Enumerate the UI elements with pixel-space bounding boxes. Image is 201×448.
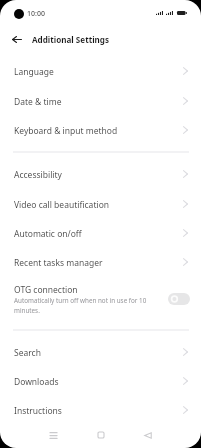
staticText: Search — [14, 347, 41, 359]
staticText: Additional Settings — [32, 34, 110, 45]
staticText: Video call beautification — [14, 199, 110, 211]
button[interactable]: Back — [126, 423, 170, 447]
staticText: Recent tasks manager — [14, 257, 103, 269]
staticText: Instructions — [14, 405, 62, 417]
button[interactable]: Downloads — [0, 367, 201, 396]
button[interactable]: Recent tasks manager — [0, 248, 201, 277]
button[interactable]: Back — [5, 27, 29, 51]
staticText: OTG connection — [14, 284, 78, 296]
button[interactable]: Language — [0, 57, 201, 86]
staticText: Downloads — [14, 376, 59, 388]
button[interactable]: Search — [0, 338, 201, 367]
staticText: Accessibility — [14, 169, 62, 181]
button[interactable]: OTG connection toggle — [168, 293, 190, 305]
button[interactable]: Keyboard & input method — [0, 116, 201, 145]
button[interactable]: Recent apps — [31, 423, 75, 447]
button[interactable]: Instructions — [0, 396, 201, 425]
button[interactable]: Automatic on/off — [0, 219, 201, 248]
button[interactable]: Accessibility — [0, 160, 201, 189]
staticText: Automatic on/off — [14, 228, 82, 240]
button[interactable]: Date & time — [0, 87, 201, 116]
staticText: Automatically turn off when not in use f… — [14, 296, 151, 315]
staticText: Language — [14, 66, 54, 78]
staticText: Date & time — [14, 96, 62, 108]
button[interactable]: Home — [79, 423, 123, 447]
button[interactable]: OTG connection — [0, 275, 201, 313]
staticText: Keyboard & input method — [14, 125, 118, 137]
staticText: 10:00 — [27, 9, 45, 19]
button[interactable]: Video call beautification — [0, 190, 201, 219]
